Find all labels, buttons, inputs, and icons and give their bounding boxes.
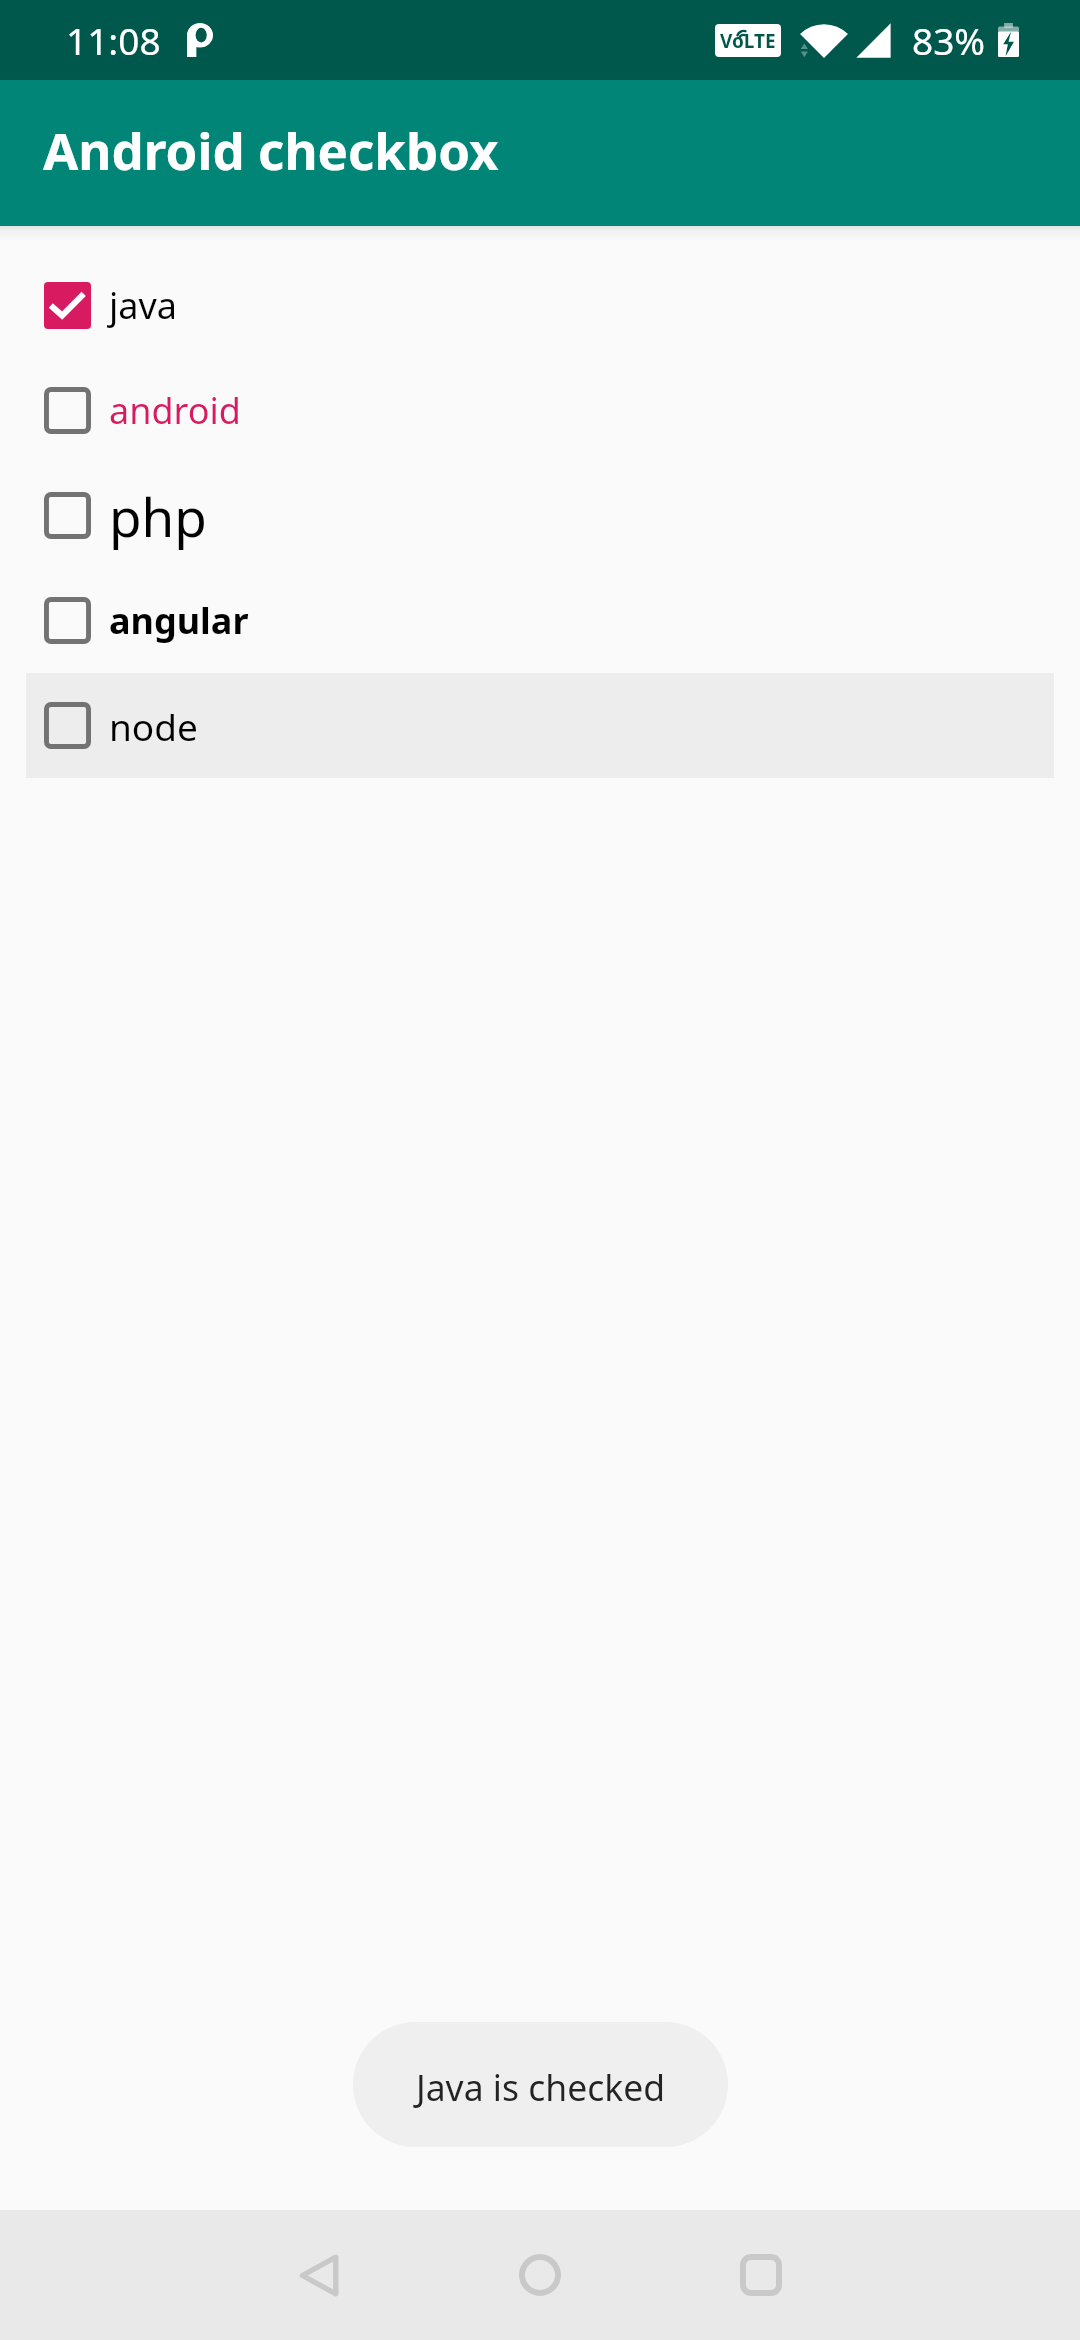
- staticText: 83%: [912, 15, 986, 65]
- staticText: Java is checked: [416, 2063, 666, 2111]
- staticText: angular: [109, 596, 249, 645]
- button[interactable]: Back: [263, 2210, 375, 2340]
- button[interactable]: Recent apps: [705, 2210, 817, 2340]
- button[interactable]: angular: [0, 568, 1080, 673]
- button[interactable]: php: [0, 463, 1080, 568]
- button[interactable]: Home: [484, 2210, 596, 2340]
- button[interactable]: node: [26, 673, 1054, 778]
- staticText: java: [109, 281, 177, 330]
- staticText: php: [109, 480, 207, 552]
- button[interactable]: android: [0, 358, 1080, 463]
- button[interactable]: java: [0, 253, 1080, 358]
- staticText: node: [109, 701, 198, 751]
- staticText: VoLTE: [720, 28, 776, 54]
- staticText: 11:08: [66, 15, 161, 65]
- staticText: android: [109, 386, 241, 435]
- staticText: Android checkbox: [43, 115, 499, 184]
- button[interactable]: Java is checked: [353, 2022, 728, 2147]
